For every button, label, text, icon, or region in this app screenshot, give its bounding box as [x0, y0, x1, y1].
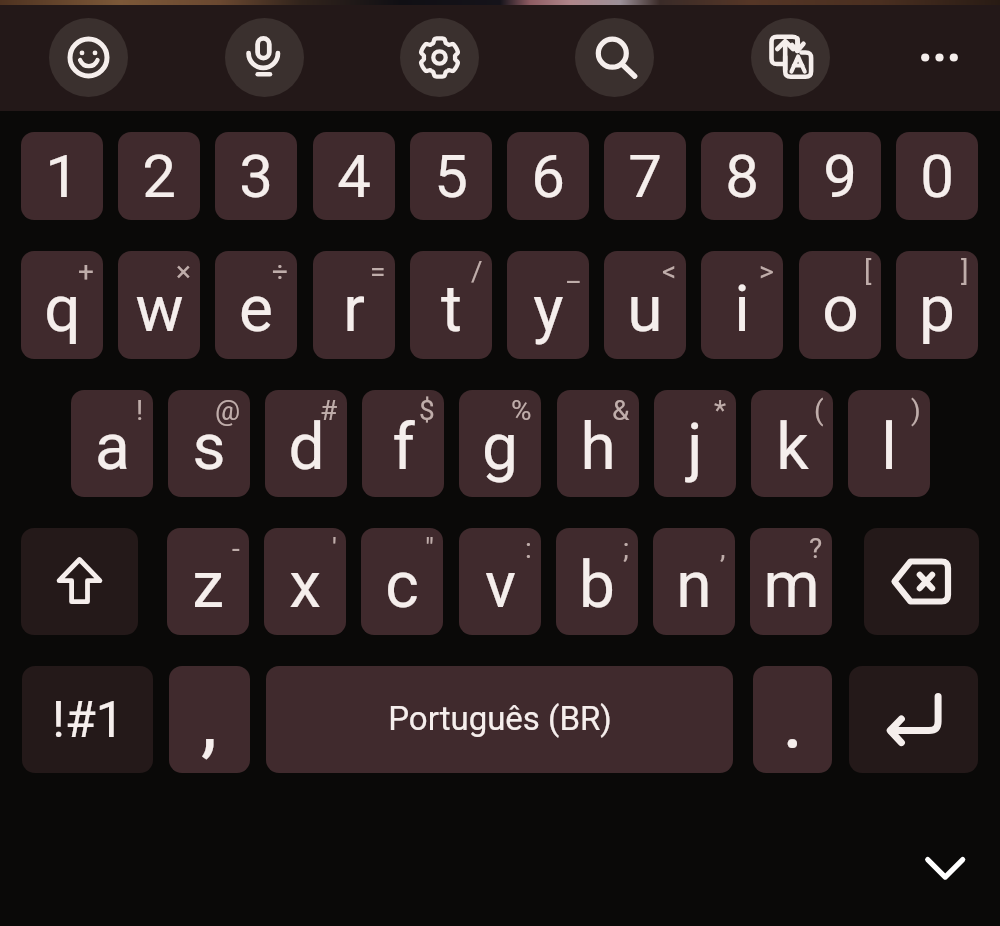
staticText: %	[511, 394, 532, 427]
button[interactable]: w	[118, 251, 200, 359]
button[interactable]: 6	[507, 132, 589, 220]
button[interactable]: d	[265, 390, 347, 497]
button[interactable]: Voice input	[225, 18, 304, 97]
staticText: ]	[961, 255, 969, 288]
staticText: _	[567, 255, 580, 288]
button[interactable]: Hide keyboard	[905, 828, 985, 908]
staticText: Português (BR)	[388, 699, 612, 738]
button[interactable]: Translate	[751, 18, 830, 97]
button[interactable]: Search	[575, 18, 654, 97]
button[interactable]: 4	[313, 132, 395, 220]
button[interactable]: More options	[900, 18, 979, 97]
staticText: /	[471, 255, 483, 288]
staticText: (	[814, 394, 824, 427]
staticText: n	[676, 548, 712, 623]
button[interactable]: 5	[410, 132, 492, 220]
button[interactable]: Enter	[849, 666, 978, 773]
button[interactable]: v	[459, 528, 541, 635]
staticText: =	[370, 255, 386, 288]
button[interactable]: Emoji	[49, 18, 128, 97]
button[interactable]: f	[362, 390, 444, 497]
staticText: ;	[623, 532, 629, 565]
staticText: j	[687, 410, 703, 485]
button[interactable]: l	[848, 390, 930, 497]
staticText: u	[627, 272, 663, 347]
button[interactable]: z	[167, 528, 249, 635]
staticText: $	[419, 394, 435, 427]
button[interactable]: ,	[169, 666, 250, 773]
button[interactable]: 3	[215, 132, 297, 220]
button[interactable]: g	[459, 390, 541, 497]
staticText: ,	[201, 672, 218, 768]
button[interactable]: Settings	[400, 18, 479, 97]
staticText: !#1	[52, 691, 124, 750]
staticText: 3	[239, 141, 273, 211]
staticText: :	[525, 532, 532, 565]
staticText: e	[239, 272, 273, 347]
button[interactable]: s	[168, 390, 250, 497]
button[interactable]: b	[556, 528, 638, 635]
staticText: i	[734, 272, 750, 347]
staticText: g	[482, 410, 518, 485]
button[interactable]: y	[507, 251, 589, 359]
button[interactable]: 9	[799, 132, 881, 220]
staticText: &	[612, 394, 630, 427]
staticText: v	[485, 548, 516, 623]
staticText: @	[215, 394, 241, 427]
staticText: "	[425, 532, 434, 565]
button[interactable]: x	[264, 528, 346, 635]
staticText: b	[579, 548, 615, 623]
button[interactable]: .	[753, 666, 832, 773]
staticText: h	[580, 410, 616, 485]
button[interactable]: e	[215, 251, 297, 359]
staticText: r	[343, 272, 365, 347]
button[interactable]: Backspace	[864, 528, 979, 635]
staticText: 0	[920, 141, 954, 211]
staticText: 4	[337, 141, 371, 211]
staticText: 9	[823, 141, 857, 211]
button[interactable]: q	[21, 251, 103, 359]
button[interactable]: 8	[701, 132, 783, 220]
button[interactable]: 1	[21, 132, 103, 220]
staticText: x	[289, 548, 321, 623]
button[interactable]: m	[750, 528, 832, 635]
button[interactable]: u	[604, 251, 686, 359]
staticText: d	[288, 410, 325, 485]
staticText: l	[881, 410, 897, 485]
button[interactable]: h	[557, 390, 639, 497]
button[interactable]: Shift	[21, 528, 138, 635]
button[interactable]: !#1	[22, 666, 153, 773]
button[interactable]: j	[654, 390, 736, 497]
staticText: '	[332, 532, 337, 565]
staticText: y	[533, 272, 564, 347]
staticText: m	[763, 548, 820, 623]
staticText: !	[136, 394, 144, 427]
button[interactable]: a	[71, 390, 153, 497]
staticText: p	[919, 272, 955, 347]
staticText: a	[95, 410, 130, 485]
staticText: w	[135, 272, 184, 347]
button[interactable]: n	[653, 528, 735, 635]
staticText: z	[192, 548, 224, 623]
staticText: ÷	[272, 255, 288, 288]
staticText: <	[662, 255, 677, 288]
staticText: 6	[531, 141, 565, 211]
staticText: 8	[725, 141, 759, 211]
button[interactable]: k	[751, 390, 833, 497]
button[interactable]: 2	[118, 132, 200, 220]
staticText: -	[232, 532, 240, 565]
staticText: ?	[809, 532, 823, 565]
staticText: 5	[434, 141, 468, 211]
button[interactable]: c	[361, 528, 443, 635]
button[interactable]: o	[799, 251, 881, 359]
button[interactable]: t	[410, 251, 492, 359]
staticText: [	[864, 255, 872, 288]
button[interactable]: 7	[604, 132, 686, 220]
button[interactable]: p	[896, 251, 978, 359]
staticText: #	[320, 394, 338, 427]
button[interactable]: Português (BR)	[266, 666, 733, 773]
staticText: o	[822, 272, 859, 347]
button[interactable]: r	[313, 251, 395, 359]
button[interactable]: 0	[896, 132, 978, 220]
button[interactable]: i	[701, 251, 783, 359]
